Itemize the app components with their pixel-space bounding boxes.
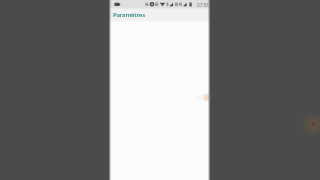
button[interactable]: Paramètres [109, 9, 210, 22]
staticText: Paramètres [113, 10, 145, 18]
other: Liste des paramètres [109, 22, 210, 180]
staticText: 07:56 [197, 2, 209, 8]
